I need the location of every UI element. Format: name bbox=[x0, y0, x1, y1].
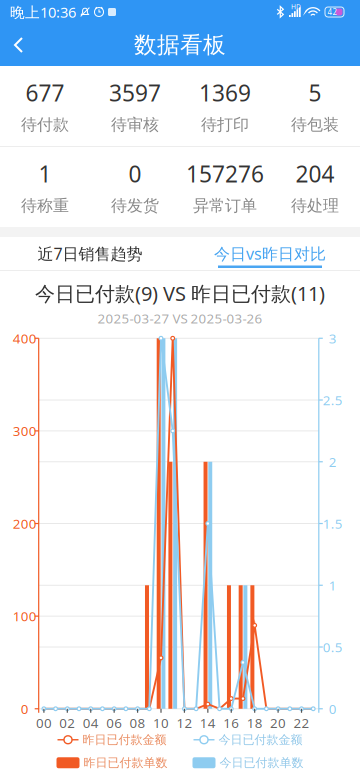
staticText: 1369 bbox=[199, 78, 251, 108]
staticText: 晚上10:36 bbox=[10, 2, 76, 22]
staticText: 异常订单 bbox=[193, 196, 257, 215]
staticText: 0 bbox=[21, 700, 29, 718]
staticText: HD bbox=[291, 2, 301, 11]
staticText: 1 bbox=[329, 576, 337, 594]
staticText: 昨日已付款金额 bbox=[78, 732, 166, 747]
staticText: 0 bbox=[128, 159, 141, 189]
staticText: 677 bbox=[25, 78, 64, 108]
button[interactable]: 近7日销售趋势 bbox=[0, 237, 180, 270]
staticText: 02 bbox=[59, 714, 75, 732]
staticText: 昨日已付款单数 bbox=[79, 755, 167, 770]
staticText: 今日已付款(9) VS 昨日已付款(11) bbox=[35, 280, 325, 307]
staticText: 5 bbox=[308, 78, 321, 108]
staticText: 04 bbox=[83, 714, 99, 732]
staticText: 今日vs昨日对比 bbox=[214, 243, 326, 264]
staticText: 400 bbox=[13, 329, 37, 347]
staticText: 16 bbox=[223, 714, 239, 732]
staticText: 今日已付款单数 bbox=[215, 755, 303, 770]
staticText: 2 bbox=[329, 453, 337, 471]
staticText: 300 bbox=[13, 422, 37, 440]
button[interactable]: Back bbox=[0, 24, 37, 66]
staticText: 12 bbox=[176, 714, 192, 732]
staticText: 3597 bbox=[109, 78, 161, 108]
staticText: 3 bbox=[329, 329, 337, 347]
staticText: 10 bbox=[153, 714, 169, 732]
staticText: 157276 bbox=[186, 159, 264, 189]
staticText: 待付款 bbox=[21, 115, 69, 134]
button[interactable]: 今日vs昨日对比 bbox=[180, 237, 360, 270]
staticText: 200 bbox=[13, 515, 37, 532]
staticText: 待打印 bbox=[201, 115, 249, 134]
staticText: 0.5 bbox=[323, 638, 343, 656]
staticText: 20 bbox=[270, 714, 286, 732]
staticText: 204 bbox=[295, 159, 334, 189]
staticText: 待包装 bbox=[291, 115, 339, 134]
staticText: 待处理 bbox=[291, 196, 339, 215]
staticText: 14 bbox=[200, 714, 216, 732]
staticText: 00 bbox=[36, 714, 52, 732]
staticText: 今日已付款金额 bbox=[214, 732, 302, 747]
staticText: 待发货 bbox=[111, 196, 159, 215]
staticText: 1 bbox=[38, 159, 51, 189]
staticText: 18 bbox=[247, 714, 263, 732]
staticText: 2.5 bbox=[323, 391, 343, 409]
staticText: 1.5 bbox=[323, 515, 343, 532]
staticText: 22 bbox=[293, 714, 309, 732]
staticText: 数据看板 bbox=[134, 31, 226, 59]
staticText: 42 bbox=[327, 7, 337, 17]
staticText: 待称重 bbox=[21, 196, 69, 215]
staticText: 100 bbox=[13, 607, 37, 625]
staticText: 08 bbox=[130, 714, 146, 732]
staticText: 待审核 bbox=[111, 115, 159, 134]
staticText: 06 bbox=[106, 714, 122, 732]
staticText: 0 bbox=[329, 700, 337, 718]
staticText: 近7日销售趋势 bbox=[37, 243, 142, 264]
staticText: 2025-03-27 VS 2025-03-26 bbox=[97, 310, 262, 327]
